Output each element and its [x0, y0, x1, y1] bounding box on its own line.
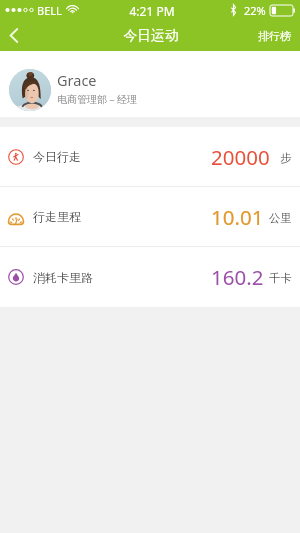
staticText: 160.2 — [211, 263, 264, 291]
button[interactable]: Back — [0, 20, 30, 51]
staticText: Grace — [57, 70, 97, 90]
staticText: 消耗卡里路 — [33, 270, 93, 285]
staticText: 公里 — [269, 211, 292, 225]
staticText: 今日运动 — [1, 27, 300, 44]
staticText: 千卡 — [269, 271, 292, 285]
staticText: 排行榜 — [258, 29, 291, 43]
staticText: 4:21 PM — [2, 3, 300, 19]
staticText: 22% — [244, 3, 266, 18]
staticText: 10.01 — [211, 203, 264, 231]
button[interactable]: 今日行走 — [0, 127, 300, 186]
button[interactable]: 排行榜 — [249, 29, 300, 43]
button[interactable]: 行走里程 — [0, 187, 300, 246]
staticText: 行走里程 — [33, 209, 81, 224]
button[interactable]: 消耗卡里路 — [0, 247, 300, 307]
staticText: BELL — [37, 3, 62, 18]
button[interactable]: Grace — [0, 51, 300, 117]
staticText: 步 — [280, 151, 292, 165]
staticText: 20000 — [211, 143, 270, 171]
staticText: 电商管理部－经理 — [57, 93, 137, 106]
staticText: 今日行走 — [33, 149, 81, 164]
